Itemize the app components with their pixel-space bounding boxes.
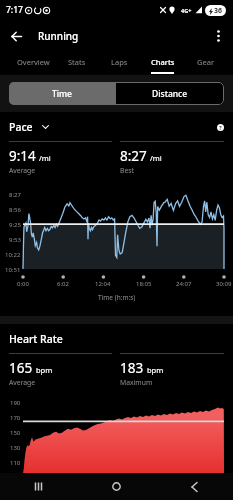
- button[interactable]: Overview: [12, 49, 55, 75]
- staticText: Stats: [68, 57, 86, 67]
- staticText: 8:56: [9, 206, 21, 214]
- staticText: bpm: [36, 365, 53, 375]
- staticText: 8:27: [120, 147, 147, 165]
- staticText: Gear: [197, 57, 214, 67]
- staticText: 18:05: [136, 280, 152, 288]
- button[interactable]: Back: [4, 24, 28, 48]
- staticText: 130: [10, 444, 21, 452]
- button[interactable]: Charts: [141, 49, 184, 75]
- button[interactable]: Back: [155, 473, 233, 500]
- staticText: 110: [10, 459, 21, 467]
- staticText: Average: [9, 378, 36, 387]
- staticText: 9:14: [9, 147, 36, 165]
- button[interactable]: Home: [77, 473, 155, 500]
- button[interactable]: Help: [214, 121, 226, 133]
- staticText: 36: [214, 6, 223, 16]
- staticText: Heart Rate: [9, 332, 63, 346]
- staticText: 10:22: [5, 251, 21, 259]
- button[interactable]: More options: [207, 25, 229, 47]
- staticText: Pace: [9, 120, 33, 134]
- staticText: 165: [9, 359, 33, 377]
- staticText: 7:17: [6, 4, 23, 16]
- staticText: 10:51: [5, 266, 21, 274]
- staticText: 170: [10, 414, 21, 422]
- staticText: 183: [120, 359, 144, 377]
- staticText: 24:07: [176, 280, 192, 288]
- button[interactable]: Stats: [55, 49, 98, 75]
- button[interactable]: Pace: [9, 120, 49, 134]
- staticText: Time (h:m:s): [98, 293, 136, 302]
- staticText: 190: [10, 399, 21, 407]
- staticText: 8:27: [9, 191, 21, 199]
- staticText: Distance: [152, 88, 188, 100]
- staticText: /mi: [39, 153, 51, 163]
- button[interactable]: Distance: [116, 82, 224, 105]
- staticText: Overview: [17, 57, 50, 67]
- staticText: Charts: [151, 57, 175, 67]
- staticText: Time: [52, 88, 73, 100]
- staticText: 12:04: [95, 280, 111, 288]
- staticText: /mi: [150, 153, 162, 163]
- staticText: 9:25: [9, 221, 21, 229]
- button[interactable]: Recent apps: [0, 473, 77, 500]
- staticText: 6:02: [57, 280, 69, 288]
- staticText: Average: [9, 166, 36, 175]
- staticText: 150: [10, 429, 21, 437]
- staticText: 0:00: [17, 280, 29, 288]
- staticText: Running: [38, 29, 79, 43]
- staticText: Best: [120, 166, 134, 175]
- staticText: 30:09: [216, 280, 232, 288]
- staticText: Maximum: [120, 378, 153, 387]
- staticText: 9:53: [9, 236, 21, 244]
- button[interactable]: Gear: [184, 49, 227, 75]
- staticText: 4G+: [181, 7, 192, 14]
- button[interactable]: Time: [9, 82, 116, 105]
- staticText: bpm: [147, 365, 164, 375]
- button[interactable]: Laps: [98, 49, 141, 75]
- staticText: ?: [219, 124, 222, 131]
- staticText: Laps: [111, 57, 128, 67]
